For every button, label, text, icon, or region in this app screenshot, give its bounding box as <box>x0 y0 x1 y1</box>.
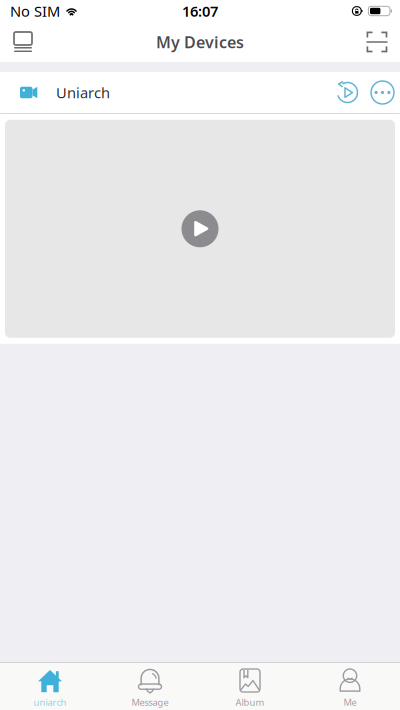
staticText: No SIM <box>10 1 60 21</box>
button[interactable]: Message <box>100 663 200 710</box>
staticText: Me <box>343 696 356 708</box>
button[interactable]: Playback <box>330 72 365 113</box>
button[interactable]: uniarch <box>0 663 100 710</box>
button[interactable]: Device layout <box>2 22 44 62</box>
staticText: 16:07 <box>182 1 218 21</box>
button[interactable]: Scan QR code <box>356 22 398 62</box>
staticText: Message <box>131 696 168 708</box>
button[interactable]: Album <box>200 663 300 710</box>
staticText: Album <box>235 696 264 708</box>
button[interactable]: More options <box>365 72 400 113</box>
staticText: My Devices <box>156 31 244 53</box>
button[interactable]: Me <box>300 663 400 710</box>
button[interactable]: Play video <box>172 201 228 257</box>
staticText: Uniarch <box>56 83 110 102</box>
staticText: uniarch <box>33 696 66 708</box>
